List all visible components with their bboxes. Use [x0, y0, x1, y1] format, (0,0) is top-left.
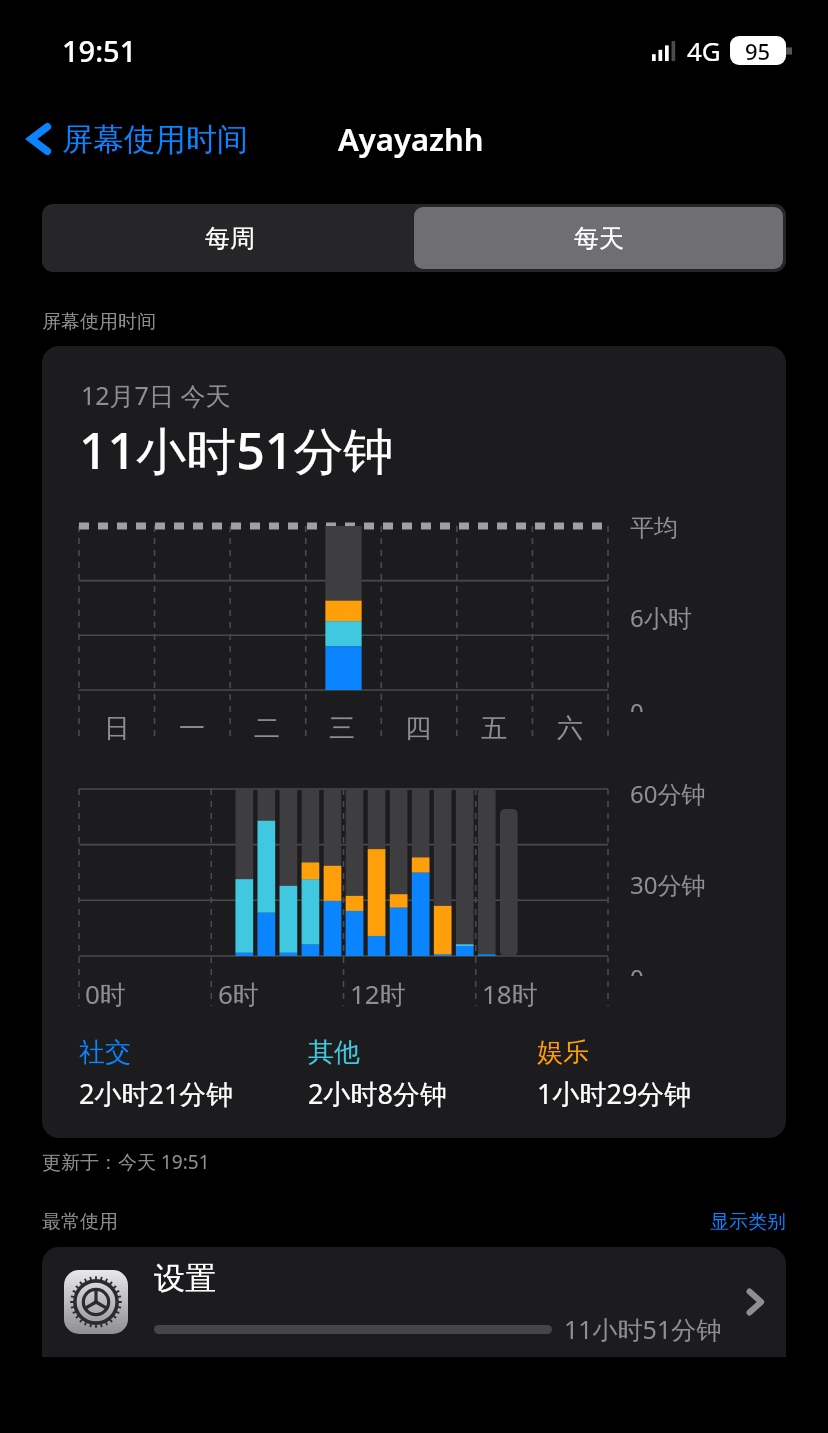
- staticText: 4G: [687, 33, 721, 68]
- staticText: 12月7日 今天: [81, 378, 231, 412]
- staticText: 60分钟: [630, 777, 706, 810]
- staticText: 2小时21分钟: [79, 1075, 234, 1112]
- staticText: 二: [254, 712, 280, 745]
- staticText: 平均: [630, 513, 678, 543]
- staticText: 0: [630, 695, 644, 712]
- staticText: 其他: [308, 1036, 360, 1069]
- staticText: 更新于：今天 19:51: [42, 1149, 210, 1175]
- staticText: 11小时51分钟: [564, 1312, 722, 1346]
- staticText: 2小时8分钟: [308, 1075, 447, 1112]
- staticText: 最常使用: [42, 1210, 118, 1234]
- staticText: 0: [630, 961, 644, 976]
- staticText: 三: [329, 712, 355, 745]
- staticText: 95: [745, 36, 771, 65]
- staticText: 19:51: [62, 31, 137, 70]
- staticText: 每天: [574, 223, 624, 254]
- staticText: 30分钟: [630, 868, 706, 901]
- staticText: 屏幕使用时间: [62, 120, 248, 159]
- other: Back: [24, 117, 54, 161]
- staticText: 娱乐: [537, 1036, 589, 1069]
- staticText: 日: [104, 712, 130, 745]
- staticText: 一: [179, 712, 205, 745]
- staticText: 屏幕使用时间: [42, 310, 156, 334]
- staticText: 1小时29分钟: [537, 1075, 692, 1112]
- staticText: 12时: [350, 976, 406, 1012]
- staticText: 设置: [154, 1259, 216, 1298]
- button[interactable]: 设置: [42, 1247, 786, 1357]
- button[interactable]: 显示类别: [710, 1210, 786, 1234]
- button[interactable]: 每天: [414, 207, 783, 269]
- staticText: 18时: [482, 976, 538, 1012]
- button[interactable]: Back: [24, 117, 248, 161]
- staticText: 11小时51分钟: [79, 416, 394, 484]
- staticText: 社交: [79, 1036, 131, 1069]
- button[interactable]: 每周: [45, 207, 414, 269]
- button[interactable]: 12月7日 今天: [42, 346, 786, 1138]
- staticText: 每周: [205, 223, 255, 254]
- staticText: 0时: [85, 976, 126, 1012]
- staticText: 6时: [218, 976, 259, 1012]
- staticText: 五: [481, 712, 507, 745]
- staticText: 显示类别: [710, 1210, 786, 1234]
- staticText: 四: [405, 712, 431, 745]
- staticText: 6小时: [630, 601, 692, 634]
- staticText: 六: [557, 712, 583, 745]
- staticText: Ayayazhh: [338, 118, 484, 160]
